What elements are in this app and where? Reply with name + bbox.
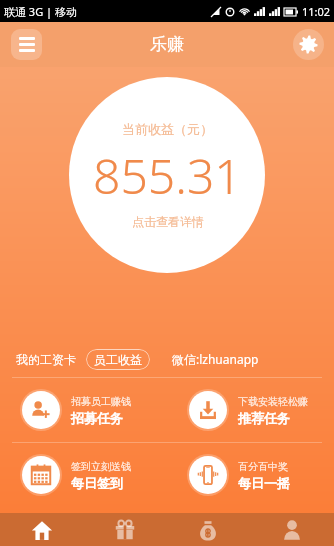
staticText: 乐赚 — [150, 34, 184, 55]
staticText: 推荐任务 — [238, 410, 290, 426]
staticText: 微信:lzhuanapp — [172, 351, 259, 367]
button[interactable]: Gifts — [83, 513, 166, 546]
staticText: 点击查看详情 — [132, 214, 204, 229]
staticText: 招募任务 — [71, 410, 123, 426]
button[interactable]: 我的工资卡 — [14, 349, 78, 370]
staticText: 签到立刻送钱 — [71, 460, 131, 473]
staticText: 每日一摇 — [238, 475, 290, 491]
button[interactable]: 当前收益（元） — [69, 77, 265, 273]
staticText: 855.31 — [93, 143, 242, 208]
button[interactable]: 下载安装轻松赚 — [167, 378, 334, 442]
staticText: 员工收益 — [94, 352, 142, 367]
staticText: 当前收益（元） — [122, 121, 213, 137]
button[interactable]: 百分百中奖 — [167, 443, 334, 507]
button[interactable]: 员工收益 — [86, 349, 150, 370]
button[interactable]: Menu — [11, 29, 42, 60]
staticText: 每日签到 — [71, 475, 123, 491]
staticText: 11:02 — [302, 4, 331, 19]
button[interactable]: 签到立刻送钱 — [0, 443, 167, 507]
staticText: 下载安装轻松赚 — [238, 395, 308, 408]
button[interactable]: Profile — [250, 513, 334, 546]
button[interactable]: Earnings — [166, 513, 250, 546]
staticText: 招募员工赚钱 — [71, 395, 131, 408]
staticText: 联通 3G | 移动 — [4, 4, 77, 19]
staticText: 百分百中奖 — [238, 460, 288, 473]
button[interactable]: Settings — [293, 29, 324, 60]
button[interactable]: Home — [0, 513, 83, 546]
button[interactable]: 招募员工赚钱 — [0, 378, 167, 442]
